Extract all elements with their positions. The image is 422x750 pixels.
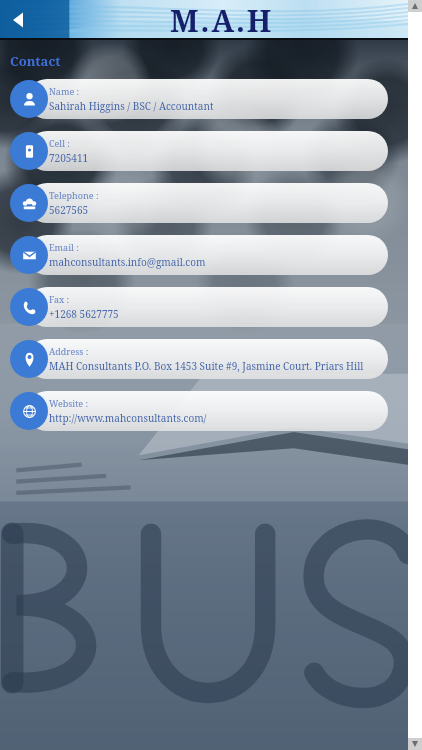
staticText: Telephone : [49,189,99,201]
button[interactable]: Address [0,337,408,381]
button[interactable]: Call telephone 5627565 [0,181,408,225]
button[interactable]: Fax [0,285,408,329]
staticText: Sahirah Higgins / BSC / Accountant [49,99,214,113]
staticText: MAH Consultants P.O. Box 1453 Suite #9, … [49,359,378,373]
staticText: +1268 5627775 [49,307,119,321]
button[interactable]: Name [0,77,408,121]
button[interactable]: Email [0,233,408,277]
staticText: http://www.mahconsultants.com/ [49,411,207,425]
staticText: Email : [49,241,79,253]
staticText: Cell : [49,137,70,149]
staticText: mahconsultants.info@gmail.com [49,255,206,269]
staticText: 7205411 [49,151,89,165]
button[interactable]: Website [0,389,408,433]
button[interactable]: Scroll down [408,738,422,750]
button[interactable]: Call cell 7205411 [0,129,408,173]
button[interactable]: Scroll up [408,0,422,12]
staticText: M.A.H [170,0,274,40]
staticText: Contact [10,52,61,70]
staticText: Website : [49,397,89,409]
staticText: 5627565 [49,203,89,217]
staticText: Name : [49,85,80,97]
button[interactable]: Back [2,3,36,37]
staticText: Fax : [49,293,70,305]
staticText: Address : [49,345,89,357]
